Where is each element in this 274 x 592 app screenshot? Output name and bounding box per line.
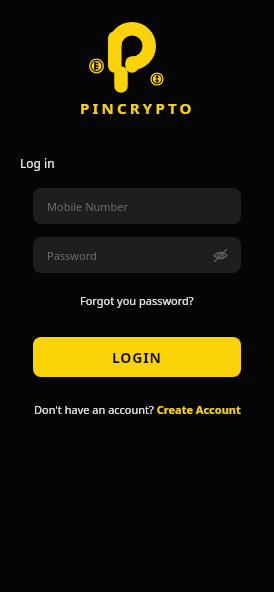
- button[interactable]: Forgot you password?: [74, 290, 200, 311]
- staticText: PINCRYPTO: [80, 98, 195, 118]
- button[interactable]: Mobile Number: [33, 188, 241, 224]
- staticText: Log in: [20, 155, 55, 171]
- button[interactable]: Password: [33, 237, 241, 273]
- button[interactable]: LOGIN: [33, 337, 241, 377]
- staticText: Forgot you password?: [80, 293, 194, 308]
- staticText: Password: [47, 248, 97, 263]
- staticText: Mobile Number: [47, 199, 129, 214]
- staticText: LOGIN: [112, 348, 162, 367]
- button[interactable]: Don't have an account? Create Account: [28, 399, 247, 420]
- staticText: Don't have an account? Create Account: [34, 402, 241, 417]
- button[interactable]: Toggle password visibility: [207, 242, 233, 268]
